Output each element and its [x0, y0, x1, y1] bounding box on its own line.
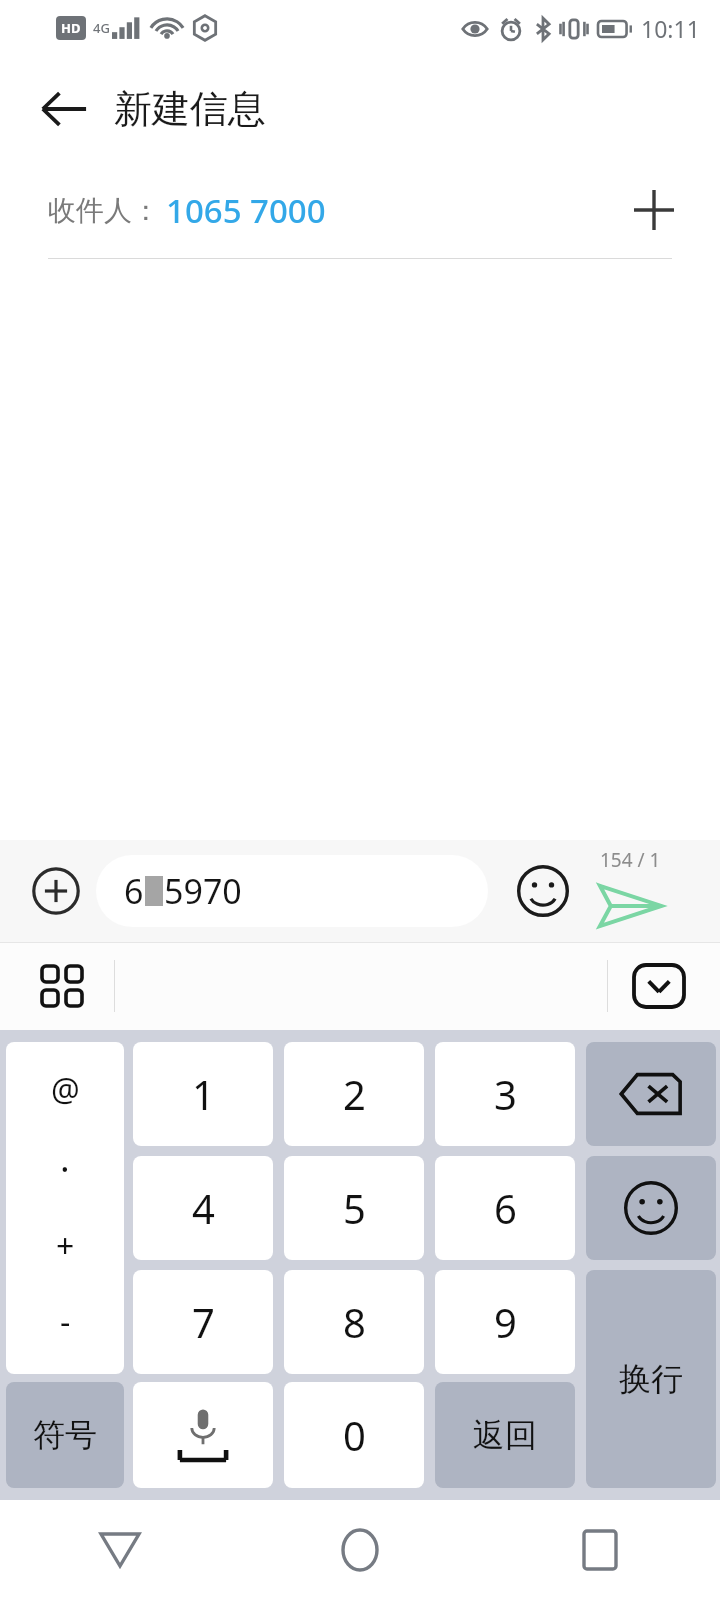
- staticText: 10:11: [641, 13, 700, 44]
- staticText: -: [60, 1300, 71, 1344]
- button[interactable]: Back: [0, 1500, 240, 1600]
- button[interactable]: 4: [133, 1156, 273, 1260]
- staticText: 5970: [164, 868, 242, 914]
- staticText: 换行: [619, 1359, 683, 1399]
- button[interactable]: 1: [133, 1042, 273, 1146]
- button[interactable]: 3: [435, 1042, 575, 1146]
- staticText: 1065 7000: [166, 188, 326, 233]
- button[interactable]: 换行: [586, 1270, 716, 1488]
- staticText: 符号: [33, 1415, 97, 1455]
- staticText: 8: [343, 1295, 366, 1349]
- button[interactable]: 7: [133, 1270, 273, 1374]
- staticText: +: [56, 1224, 75, 1268]
- staticText: 返回: [473, 1415, 537, 1455]
- button[interactable]: 9: [435, 1270, 575, 1374]
- button[interactable]: Emoji keyboard: [586, 1156, 716, 1260]
- staticText: 7: [192, 1295, 215, 1349]
- staticText: 新建信息: [114, 85, 266, 133]
- button[interactable]: Send message: [584, 843, 676, 939]
- button[interactable]: Delete: [586, 1042, 716, 1146]
- button[interactable]: Hide keyboard: [624, 951, 694, 1021]
- button[interactable]: Add attachment: [22, 857, 90, 925]
- staticText: @: [51, 1068, 80, 1112]
- staticText: 6: [494, 1181, 517, 1235]
- button[interactable]: Add recipient: [622, 178, 686, 242]
- staticText: 4: [192, 1181, 215, 1235]
- staticText: HD: [61, 19, 81, 37]
- staticText: 1: [192, 1067, 215, 1121]
- staticText: 9: [494, 1295, 517, 1349]
- button[interactable]: 0: [284, 1382, 424, 1488]
- button[interactable]: Recent apps: [480, 1500, 720, 1600]
- staticText: 6: [124, 868, 144, 914]
- staticText: 2: [343, 1067, 366, 1121]
- button[interactable]: Symbols: [6, 1042, 124, 1374]
- button[interactable]: 8: [284, 1270, 424, 1374]
- staticText: 154 / 1: [600, 847, 661, 873]
- staticText: 3: [494, 1067, 517, 1121]
- button[interactable]: Voice input: [133, 1382, 273, 1488]
- button[interactable]: 符号: [6, 1382, 124, 1488]
- button[interactable]: 6: [96, 855, 488, 927]
- button[interactable]: Keyboard layouts: [26, 950, 98, 1022]
- staticText: 5: [343, 1181, 366, 1235]
- button[interactable]: 6: [435, 1156, 575, 1260]
- staticText: 0: [343, 1408, 366, 1462]
- staticText: ·: [60, 1144, 70, 1193]
- button[interactable]: 返回: [435, 1382, 575, 1488]
- button[interactable]: Emoji: [510, 858, 576, 924]
- button[interactable]: Home: [240, 1500, 480, 1600]
- staticText: 4G: [93, 19, 110, 37]
- button[interactable]: Back: [32, 77, 96, 141]
- staticText: 收件人：: [48, 193, 160, 228]
- button[interactable]: 5: [284, 1156, 424, 1260]
- button[interactable]: 2: [284, 1042, 424, 1146]
